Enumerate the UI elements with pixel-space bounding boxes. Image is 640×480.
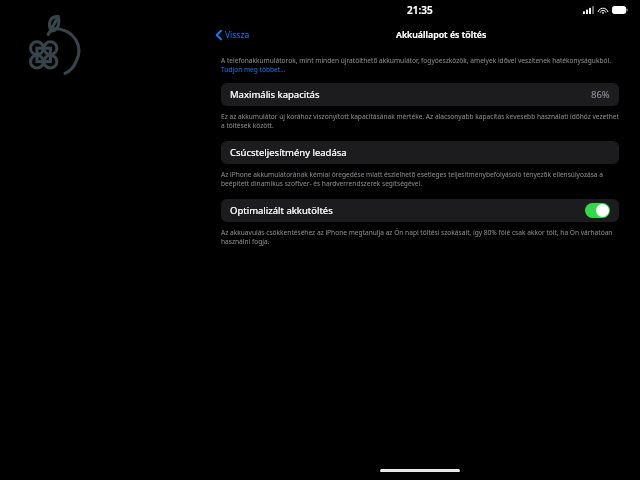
staticText: 21:35 <box>407 3 433 17</box>
staticText: Az akkuavulás csökkentéséhez az iPhone m… <box>221 228 619 246</box>
staticText: A telefonakkumulátorok, mint minden újra… <box>221 56 619 74</box>
staticText: Az iPhone akkumulátorának kémiai öregedé… <box>221 170 619 188</box>
staticText: Ez az akkumulátor új korához viszonyítot… <box>221 112 619 130</box>
button[interactable]: Optimalizált akkutöltés kapcsoló <box>585 203 610 218</box>
button[interactable]: Maximális kapacitás <box>221 83 619 106</box>
button[interactable]: Csúcsteljesítmény leadása <box>221 141 619 164</box>
staticText: Csúcsteljesítmény leadása <box>230 146 347 159</box>
staticText: Maximális kapacitás <box>230 88 320 101</box>
button[interactable]: Vissza <box>214 27 252 43</box>
staticText: Vissza <box>225 29 250 41</box>
button[interactable]: Optimalizált akkutöltés <box>221 199 619 222</box>
staticText: Optimalizált akkutöltés <box>230 204 333 217</box>
staticText: 86% <box>591 88 610 101</box>
staticText: Akkuállapot és töltés <box>396 29 487 41</box>
